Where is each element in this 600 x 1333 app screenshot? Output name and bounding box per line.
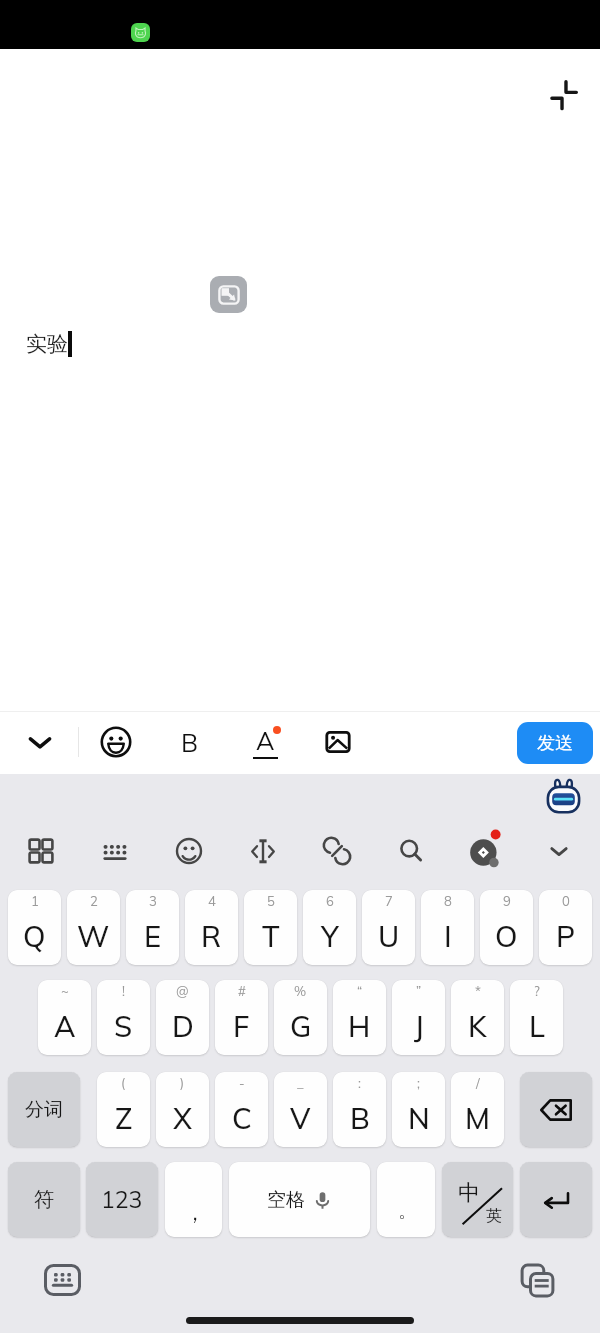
button[interactable]: 123 — [86, 1162, 158, 1237]
staticText: ( — [121, 1075, 126, 1091]
staticText: # — [238, 983, 246, 999]
button[interactable]: “ — [333, 980, 386, 1055]
staticText: S — [114, 1008, 133, 1044]
button[interactable]: Hide keyboard — [533, 825, 585, 877]
staticText: B — [181, 727, 199, 758]
button[interactable]: 分词 — [8, 1072, 80, 1147]
button[interactable]: 1 — [8, 890, 61, 965]
button[interactable]: 3 — [126, 890, 179, 965]
button[interactable]: 。 — [377, 1162, 435, 1237]
staticText: 空格 — [267, 1188, 305, 1212]
staticText: 0 — [562, 893, 570, 909]
staticText: ) — [180, 1075, 185, 1091]
button[interactable]: Assistant — [544, 776, 583, 815]
button[interactable]: B — [170, 722, 210, 762]
staticText: 。 — [398, 1200, 416, 1223]
staticText: H — [348, 1008, 371, 1044]
button[interactable]: 4 — [185, 890, 238, 965]
button[interactable]: @ — [156, 980, 209, 1055]
button[interactable]: % — [274, 980, 327, 1055]
button[interactable]: Backspace — [520, 1072, 592, 1147]
button[interactable]: ， — [165, 1162, 222, 1237]
button[interactable]: ! — [97, 980, 150, 1055]
button[interactable]: ) — [156, 1072, 209, 1147]
staticText: / — [476, 1075, 480, 1091]
staticText: ， — [185, 1201, 205, 1226]
staticText: D — [172, 1008, 194, 1044]
button[interactable]: Keyboard layout — [89, 825, 141, 877]
button[interactable]: Enter — [520, 1162, 592, 1237]
button[interactable]: Search — [385, 825, 437, 877]
staticText: K — [468, 1008, 487, 1044]
staticText: Q — [23, 918, 46, 954]
button[interactable]: AI assistant — [459, 825, 511, 877]
button[interactable]: ; — [392, 1072, 445, 1147]
staticText: 5 — [267, 893, 275, 909]
button[interactable]: 2 — [67, 890, 120, 965]
staticText: “ — [357, 983, 363, 999]
staticText: : — [358, 1075, 361, 1091]
button[interactable]: : — [333, 1072, 386, 1147]
staticText: U — [378, 918, 400, 954]
button[interactable]: ( — [97, 1072, 150, 1147]
staticText: 发送 — [537, 732, 573, 755]
button[interactable]: 空格 — [229, 1162, 370, 1237]
button[interactable]: 6 — [303, 890, 356, 965]
staticText: 7 — [385, 893, 393, 909]
button[interactable]: 0 — [539, 890, 592, 965]
staticText: N — [408, 1100, 430, 1136]
staticText: X — [173, 1100, 193, 1136]
staticText: * — [475, 983, 481, 999]
staticText: F — [233, 1008, 250, 1044]
staticText: - — [239, 1075, 245, 1091]
button[interactable]: Apps — [15, 825, 67, 877]
button[interactable]: ~ — [38, 980, 91, 1055]
staticText: A — [256, 725, 275, 756]
button[interactable]: - — [215, 1072, 268, 1147]
staticText: A — [54, 1008, 76, 1044]
button[interactable]: * — [451, 980, 504, 1055]
button[interactable]: Insert image — [318, 722, 358, 762]
button[interactable]: 7 — [362, 890, 415, 965]
staticText: ! — [122, 983, 125, 999]
button[interactable]: / — [451, 1072, 504, 1147]
staticText: J — [414, 1008, 424, 1044]
staticText: 123 — [101, 1185, 143, 1214]
staticText: 8 — [444, 893, 452, 909]
button[interactable]: ? — [510, 980, 563, 1055]
staticText: C — [232, 1100, 252, 1136]
staticText: O — [495, 918, 518, 954]
button[interactable]: Hide keyboard — [20, 722, 60, 762]
staticText: 1 — [31, 893, 39, 909]
staticText: ” — [416, 983, 422, 999]
button[interactable]: # — [215, 980, 268, 1055]
staticText: R — [201, 918, 222, 954]
button[interactable]: Emoji — [163, 825, 215, 877]
button[interactable]: 8 — [421, 890, 474, 965]
button[interactable]: Insert attachment — [210, 276, 247, 313]
staticText: 分词 — [25, 1098, 63, 1122]
button[interactable]: ” — [392, 980, 445, 1055]
staticText: 符 — [34, 1187, 54, 1212]
staticText: B — [350, 1100, 370, 1136]
staticText: T — [262, 918, 280, 954]
staticText: 2 — [90, 893, 98, 909]
staticText: ? — [534, 983, 540, 999]
staticText: 英 — [486, 1206, 502, 1226]
button[interactable]: 9 — [480, 890, 533, 965]
button[interactable]: _ — [274, 1072, 327, 1147]
button[interactable]: Clipboard link — [311, 825, 363, 877]
button[interactable]: Clipboard — [518, 1261, 556, 1299]
button[interactable]: Emoji — [96, 722, 136, 762]
button[interactable]: 发送 — [517, 722, 593, 764]
staticText: 3 — [149, 893, 157, 909]
button[interactable]: 符 — [8, 1162, 80, 1237]
staticText: G — [290, 1008, 312, 1044]
button[interactable]: Chinese English toggle — [442, 1162, 513, 1237]
button[interactable]: Collapse — [542, 73, 586, 117]
button[interactable]: 5 — [244, 890, 297, 965]
staticText: 9 — [503, 893, 511, 909]
button[interactable]: A — [245, 722, 285, 762]
button[interactable]: Switch keyboard — [44, 1263, 81, 1296]
button[interactable]: Text cursor — [237, 825, 289, 877]
